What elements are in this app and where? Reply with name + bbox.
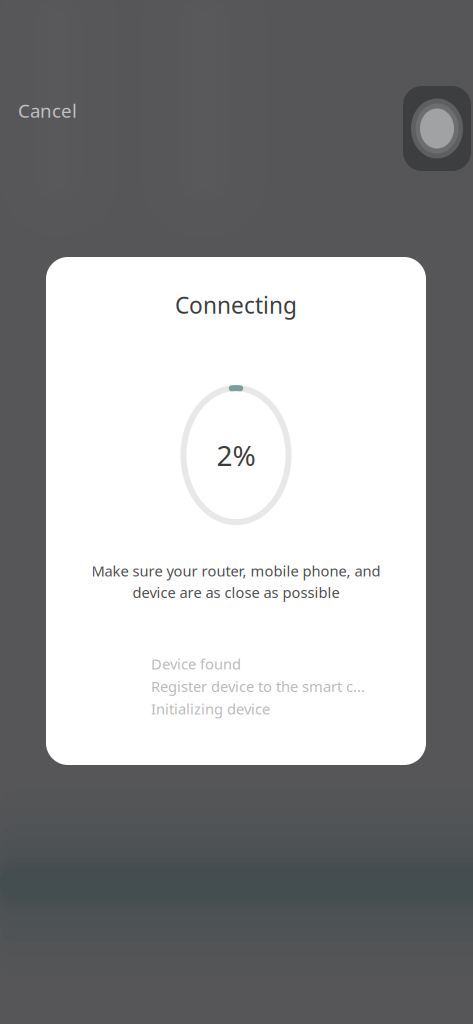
staticText: Make sure your router, mobile phone, and bbox=[91, 561, 380, 581]
staticText: device are as close as possible bbox=[132, 583, 339, 602]
staticText: 2% bbox=[216, 436, 255, 474]
staticText: Register device to the smart c... bbox=[151, 676, 365, 696]
staticText: Cancel bbox=[18, 98, 77, 123]
staticText: Connecting bbox=[175, 290, 297, 320]
staticText: Device found bbox=[151, 654, 241, 674]
button[interactable]: Cancel bbox=[0, 90, 95, 131]
button[interactable]: Device bbox=[403, 86, 471, 171]
staticText: Initializing device bbox=[151, 699, 270, 718]
